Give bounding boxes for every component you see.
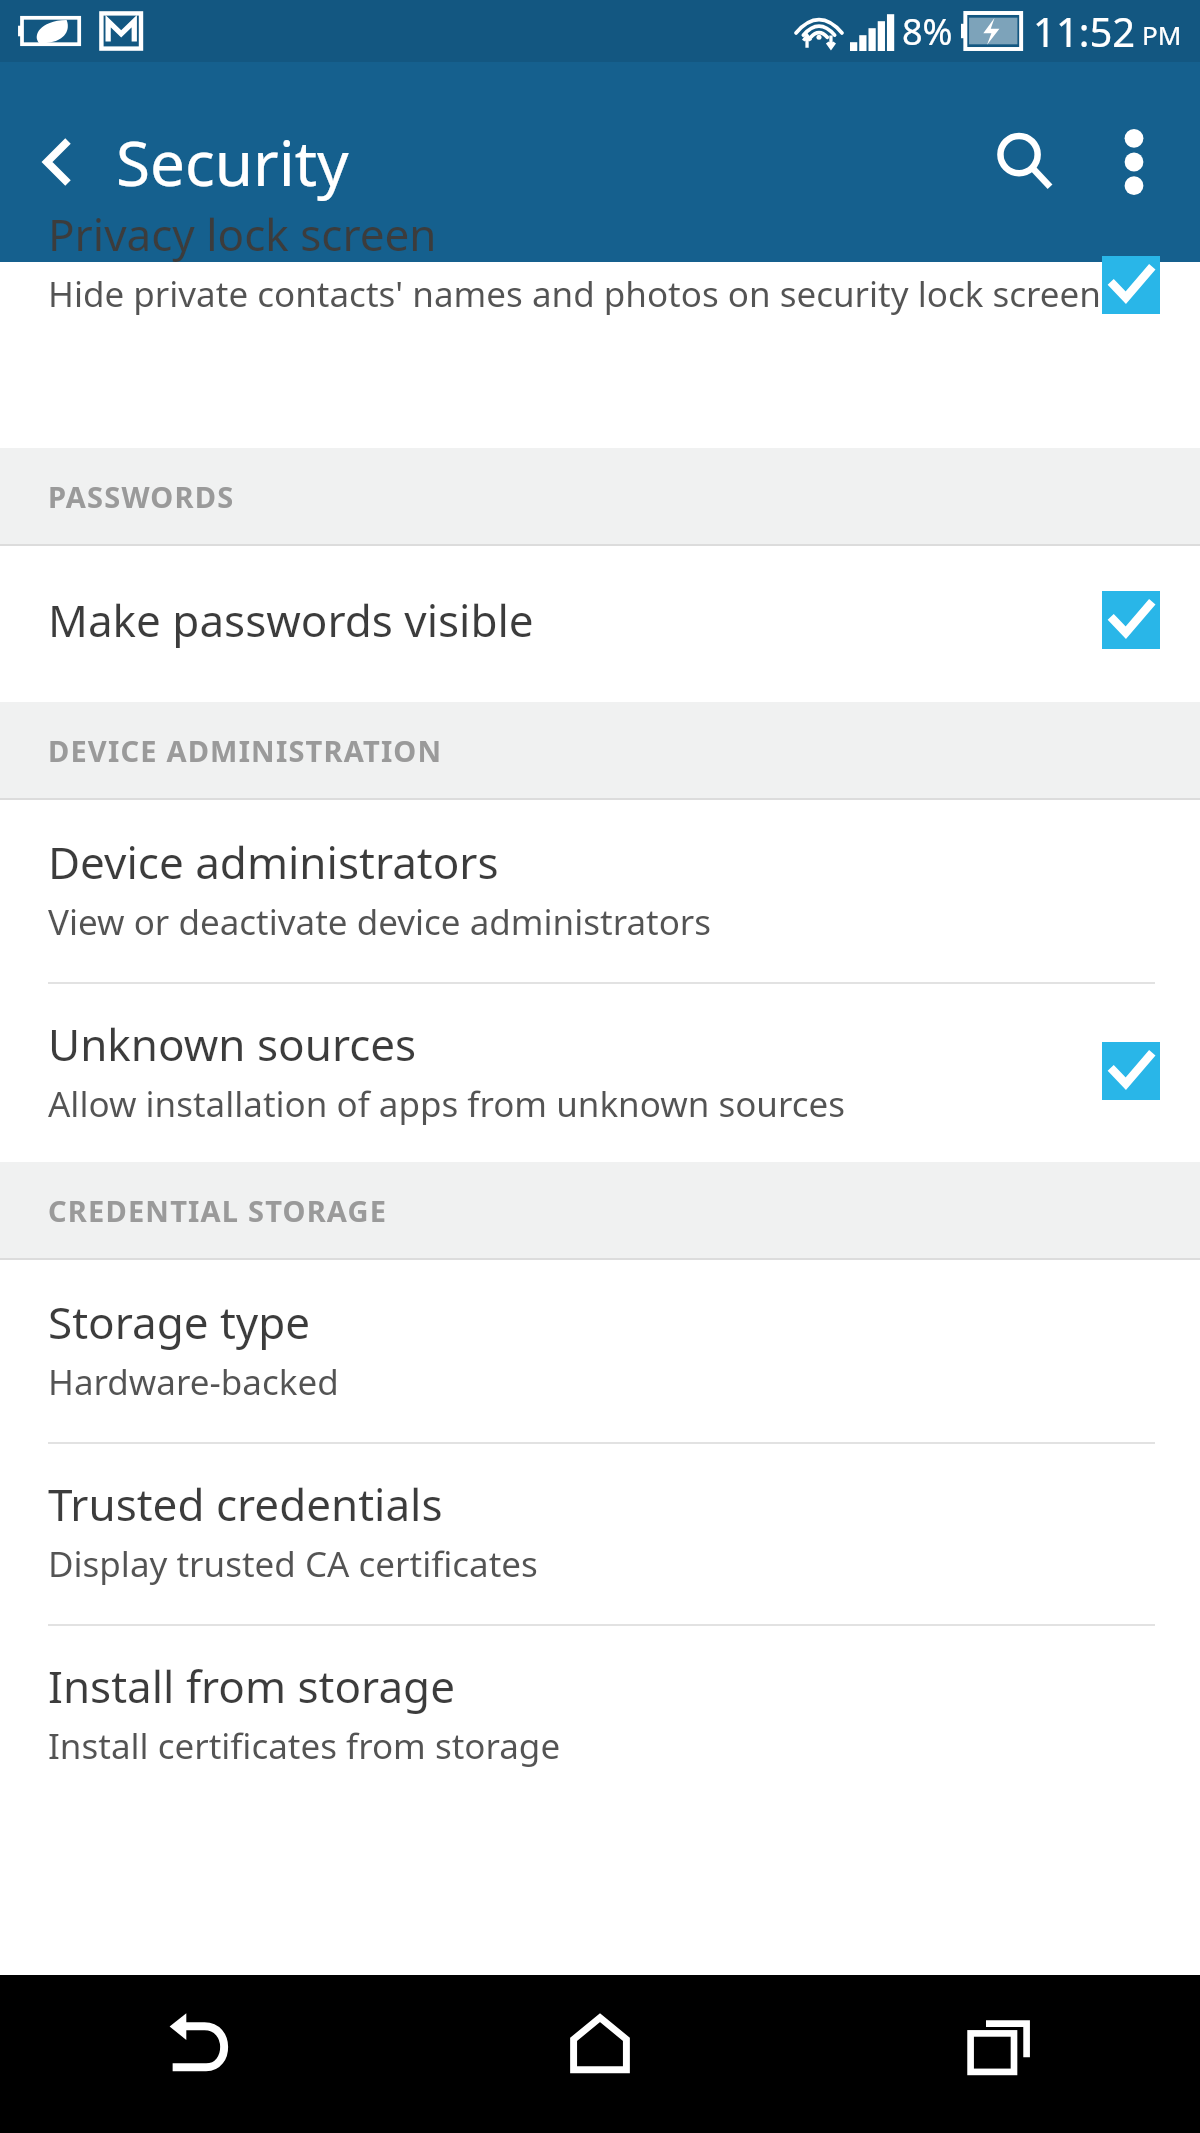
button[interactable]: Back [14, 117, 104, 207]
staticText: Install from storage [48, 1656, 455, 1716]
staticText: DEVICE ADMINISTRATION [48, 731, 443, 770]
staticText: PASSWORDS [48, 477, 235, 516]
staticText: View or deactivate device administrators [48, 898, 712, 946]
button[interactable]: Install from storage [0, 1626, 1200, 1806]
staticText: CREDENTIAL STORAGE [48, 1191, 388, 1230]
button[interactable]: Unknown sources [0, 984, 1200, 1162]
staticText: PM [1142, 17, 1182, 52]
button[interactable]: Trusted credentials [0, 1444, 1200, 1624]
staticText: Display trusted CA certificates [48, 1540, 538, 1588]
staticText: Make passwords visible [48, 590, 534, 650]
button[interactable]: Recent apps [800, 1975, 1200, 2133]
staticText: Hardware-backed [48, 1358, 339, 1406]
staticText: Hide private contacts' names and photos … [48, 270, 1101, 318]
staticText: Allow installation of apps from unknown … [48, 1080, 846, 1128]
staticText: 8% [902, 7, 953, 56]
staticText: Privacy lock screen [48, 204, 437, 264]
button[interactable]: More options [1082, 110, 1186, 214]
button[interactable]: Privacy lock screen [0, 262, 1200, 448]
button[interactable]: Make passwords visible [0, 546, 1200, 702]
staticText: Device administrators [48, 832, 499, 892]
staticText: Install certificates from storage [48, 1722, 561, 1770]
button[interactable]: Search [966, 104, 1082, 220]
staticText: Trusted credentials [48, 1474, 443, 1534]
button[interactable]: Home [400, 1975, 800, 2133]
staticText: Unknown sources [48, 1014, 417, 1074]
button[interactable]: Device administrators [0, 800, 1200, 982]
button[interactable]: Storage type [0, 1260, 1200, 1442]
staticText: 11:52 [1033, 4, 1136, 58]
button[interactable]: Back [0, 1975, 400, 2133]
staticText: Storage type [48, 1292, 311, 1352]
staticText: Security [116, 120, 349, 204]
